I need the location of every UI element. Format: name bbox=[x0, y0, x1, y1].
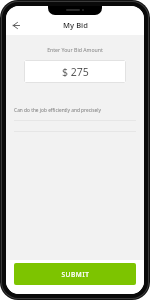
button[interactable]: SUBMIT bbox=[14, 263, 136, 285]
staticText: My Bid bbox=[63, 20, 88, 30]
button[interactable]: Back bbox=[6, 16, 24, 34]
staticText: SUBMIT bbox=[61, 270, 90, 279]
staticText: $ 275 bbox=[62, 65, 89, 79]
staticText: Can do the job efficiently and precisely bbox=[14, 107, 101, 114]
button[interactable]: $ 275 bbox=[24, 60, 126, 83]
staticText: Enter Your Bid Amount bbox=[47, 46, 103, 53]
